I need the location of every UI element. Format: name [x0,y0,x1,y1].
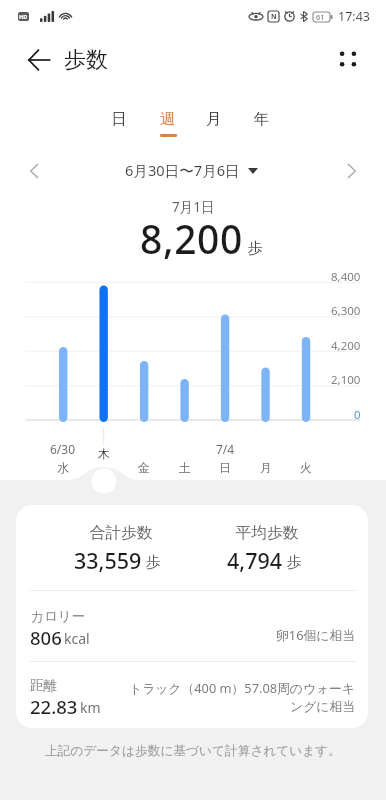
staticText: 金 [138,460,150,475]
staticText: トラック（400 m）57.08周のウォーキングに相当 [116,679,355,715]
staticText: 火 [300,460,312,475]
staticText: 歩 [146,553,161,572]
staticText: 水 [57,460,69,475]
button[interactable]: Next week [336,155,368,187]
staticText: 22.83 [30,694,78,719]
staticText: 日 [111,109,127,129]
staticText: 7月1日 [172,198,215,216]
button[interactable]: 6月30日〜7月6日 [125,160,258,180]
staticText: 6月30日〜7月6日 [125,160,240,180]
staticText: 年 [254,109,270,129]
staticText: 806 [30,625,62,650]
staticText: 8,200 [140,212,243,265]
staticText: 7/4 [216,441,235,457]
staticText: 8,400 [331,269,361,285]
staticText: 週 [160,109,176,129]
staticText: 月 [206,109,222,129]
staticText: 33,559 [74,546,142,575]
staticText: 17:43 [338,8,370,25]
button[interactable]: 日 [96,104,142,140]
staticText: N [271,12,277,22]
staticText: km [80,698,101,717]
staticText: 6/30 [50,441,76,457]
staticText: kcal [64,629,90,648]
staticText: 距離 [30,677,58,694]
staticText: カロリー [30,608,86,625]
staticText: 月 [260,460,272,475]
button[interactable]: 年 [239,104,285,140]
staticText: 合計歩数 [41,523,201,543]
staticText: 平均歩数 [187,523,347,543]
staticText: 歩数 [64,46,108,74]
staticText: 歩 [248,239,263,258]
staticText: 日 [219,460,231,475]
staticText: 卵16個に相当 [116,626,355,643]
staticText: 6,300 [331,303,361,319]
staticText: 歩 [287,553,302,572]
staticText: 0 [354,407,361,423]
button[interactable]: Back [23,44,54,75]
button[interactable]: Previous week [18,155,50,187]
staticText: 4,200 [331,338,361,354]
staticText: 土 [179,460,191,475]
staticText: 上記のデータは歩数に基づいて計算されています。 [45,743,341,759]
button[interactable]: 週 [145,104,191,140]
staticText: 61 [316,12,325,22]
staticText: 4,794 [227,546,283,575]
button[interactable]: 月 [191,104,237,140]
button[interactable]: More options [331,42,364,75]
staticText: 2,100 [331,372,361,388]
staticText: HD [19,13,28,20]
staticText: 木 [98,446,110,461]
